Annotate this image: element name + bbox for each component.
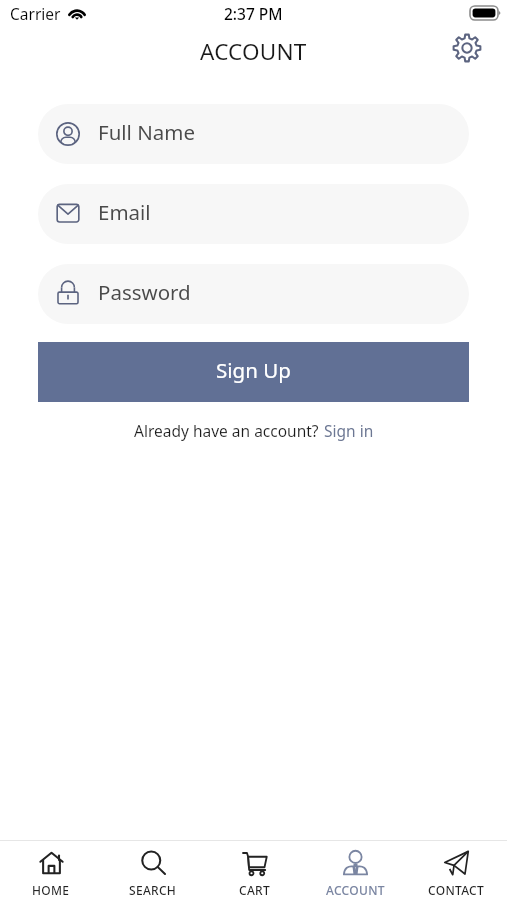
button[interactable]: Sign in	[324, 420, 374, 441]
button[interactable]: CONTACT	[406, 841, 507, 900]
staticText: Sign Up	[216, 356, 291, 384]
staticText: Sign in	[324, 420, 374, 441]
button[interactable]: Sign Up	[38, 342, 469, 402]
staticText: Already have an account?	[134, 420, 319, 441]
staticText: CONTACT	[428, 882, 485, 898]
staticText: ACCOUNT	[326, 882, 385, 898]
button[interactable]: Settings	[452, 33, 482, 63]
button[interactable]: Full Name	[38, 104, 469, 164]
button[interactable]: ACCOUNT	[305, 841, 406, 900]
staticText: Email	[98, 198, 151, 226]
staticText: Password	[98, 278, 191, 306]
staticText: Full Name	[98, 118, 196, 146]
button[interactable]: HOME	[0, 841, 102, 900]
button[interactable]: CART	[204, 841, 305, 900]
staticText: HOME	[32, 882, 70, 898]
staticText: CART	[239, 882, 271, 898]
staticText: ACCOUNT	[200, 36, 307, 67]
staticText: Carrier	[10, 3, 61, 24]
staticText: 2:37 PM	[224, 3, 283, 24]
button[interactable]: SEARCH	[102, 841, 204, 900]
button[interactable]: Email	[38, 184, 469, 244]
staticText: SEARCH	[129, 882, 177, 898]
button[interactable]: Password	[38, 264, 469, 324]
